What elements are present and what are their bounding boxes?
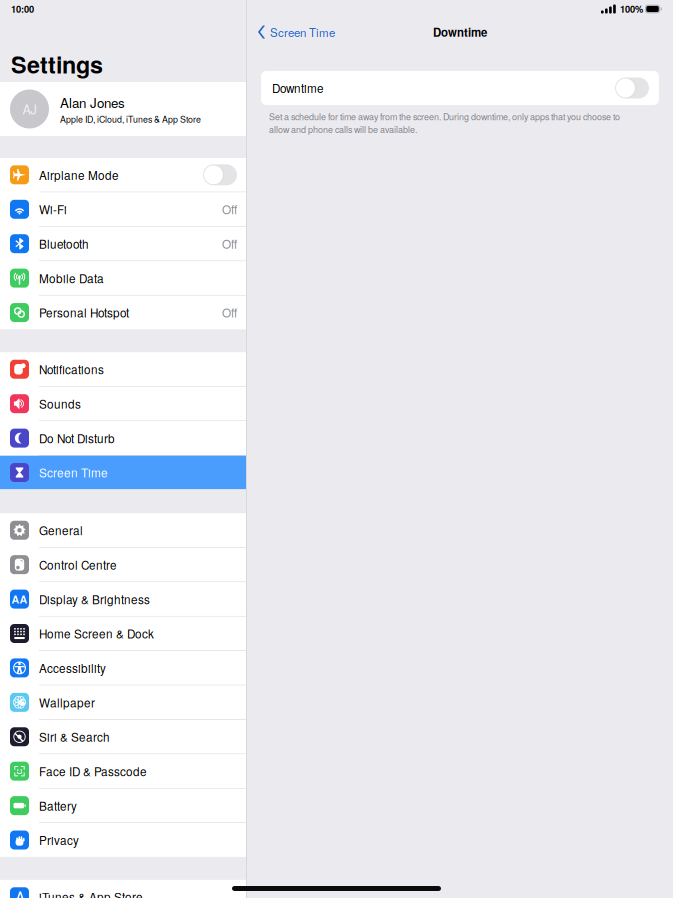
staticText: Battery [39,797,77,814]
button[interactable]: Bluetooth [0,227,246,260]
staticText: Notifications [39,361,104,378]
button[interactable]: Wi-Fi [0,192,246,226]
staticText: Display & Brightness [39,591,150,607]
button[interactable]: Control Centre [0,548,246,581]
staticText: Screen Time [270,24,335,40]
button[interactable]: Face ID & Passcode [0,754,246,788]
button[interactable]: Wallpaper [0,685,246,719]
staticText: Apple ID, iCloud, iTunes & App Store [60,113,201,125]
button[interactable]: Personal Hotspot [0,296,246,329]
staticText: Settings [11,47,103,81]
button[interactable]: AJ [0,82,246,136]
staticText: Sounds [39,395,81,412]
staticText: 10:00 [11,2,34,16]
staticText: Alan Jones [60,93,125,112]
button[interactable]: General [0,513,246,547]
staticText: Accessibility [39,659,106,676]
button[interactable]: Airplane Mode [0,158,246,192]
staticText: Bluetooth [39,235,89,252]
button[interactable]: Screen Time [247,24,335,40]
button[interactable]: Siri & Search [0,720,246,754]
button[interactable]: Mobile Data [0,261,246,295]
staticText: AA [11,591,27,607]
staticText: AJ [22,100,36,118]
button[interactable]: Notifications [0,352,246,386]
staticText: Off [222,235,237,252]
staticText: Wallpaper [39,694,95,711]
staticText: Face ID & Passcode [39,763,147,780]
button[interactable]: Sounds [0,387,246,420]
staticText: Privacy [39,832,79,848]
staticText: Home Screen & Dock [39,625,154,642]
staticText: General [39,522,83,539]
staticText: Airplane Mode [39,166,119,183]
button[interactable]: AA [0,582,246,616]
staticText: Control Centre [39,556,117,573]
staticText: Siri & Search [39,728,110,745]
button[interactable]: Screen Time [0,456,246,489]
staticText: 100% [620,2,643,16]
staticText: Downtime [272,80,324,96]
staticText: Personal Hotspot [39,304,129,321]
staticText: Screen Time [39,464,108,481]
button[interactable]: iTunes & App Store [0,880,246,898]
staticText: Off [222,201,237,218]
staticText: Wi-Fi [39,201,67,218]
staticText: Off [222,304,237,321]
button[interactable]: Home Screen & Dock [0,617,246,650]
staticText: Set a schedule for time away from the sc… [269,110,620,136]
button[interactable]: Privacy [0,823,246,857]
staticText: iTunes & App Store [39,888,143,898]
button[interactable]: Accessibility [0,651,246,685]
button[interactable]: Battery [0,789,246,822]
staticText: Downtime [433,24,487,40]
staticText: Mobile Data [39,270,104,286]
button[interactable]: Do Not Disturb [0,421,246,455]
staticText: Do Not Disturb [39,430,115,446]
